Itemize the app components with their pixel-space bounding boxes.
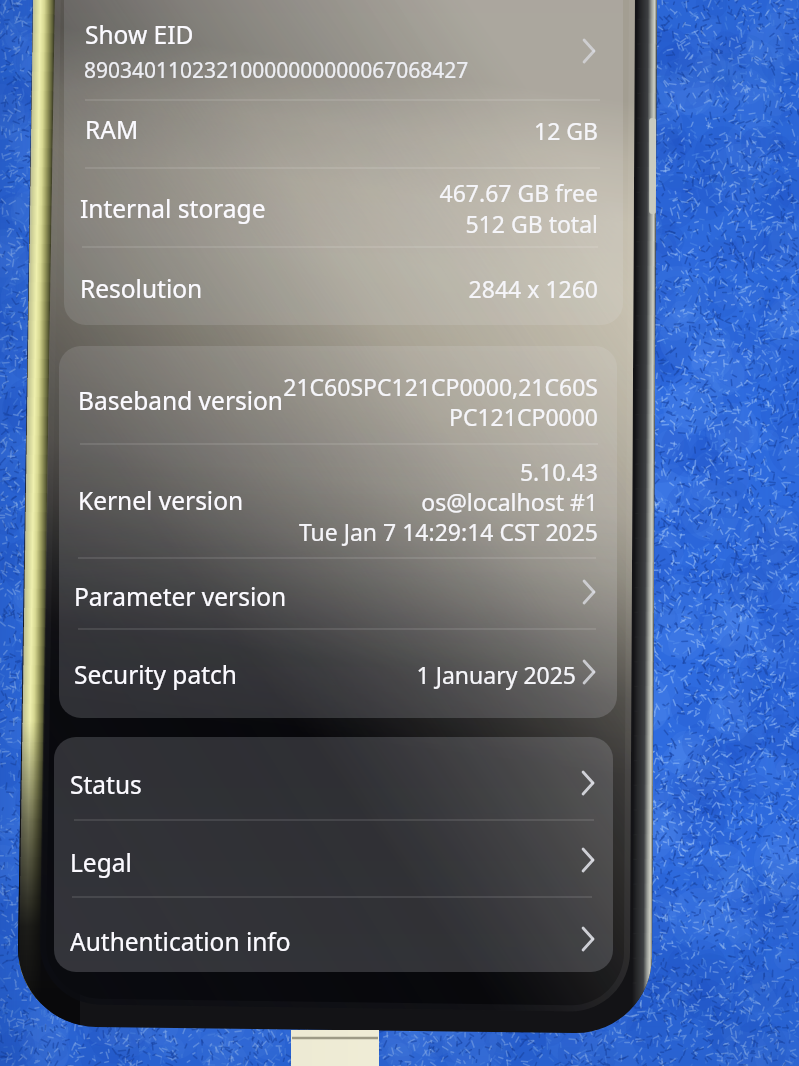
button[interactable]: Internal storage [63, 168, 622, 247]
staticText: Baseband version [78, 384, 284, 417]
staticText: PC121CP0000 [138, 401, 598, 432]
staticText: Status [70, 768, 142, 801]
staticText: RAM [85, 113, 139, 146]
staticText: 5.10.43 [138, 456, 598, 487]
button[interactable]: Kernel version [58, 444, 620, 558]
button[interactable]: Legal [53, 820, 618, 897]
button[interactable]: Status [53, 735, 618, 820]
staticText: os@localhost #1 [138, 486, 598, 517]
button[interactable]: Security patch [58, 629, 620, 716]
button[interactable]: Resolution [63, 247, 622, 326]
button[interactable]: Authentication info [53, 897, 618, 972]
staticText: Show EID [85, 18, 194, 51]
staticText: Security patch [74, 658, 237, 691]
button[interactable]: Baseband version [58, 347, 620, 444]
button[interactable]: RAM [63, 100, 622, 168]
staticText: Authentication info [70, 925, 291, 958]
staticText: Tue Jan 7 14:29:14 CST 2025 [138, 516, 598, 547]
staticText: Resolution [80, 272, 203, 305]
button[interactable]: Show EID [63, 0, 622, 92]
staticText: 89034011023210000000000067068427 [84, 56, 469, 85]
staticText: 467.67 GB free [138, 177, 598, 208]
staticText: 1 January 2025 [116, 659, 576, 690]
staticText: Kernel version [78, 484, 244, 517]
staticText: 21C60SPC121CP0000,21C60S [138, 371, 598, 402]
staticText: Parameter version [74, 580, 287, 613]
staticText: 2844 x 1260 [138, 273, 598, 304]
staticText: Legal [70, 846, 132, 879]
staticText: 12 GB [138, 115, 598, 146]
staticText: Internal storage [80, 192, 266, 225]
button[interactable]: Parameter version [58, 558, 620, 629]
staticText: 512 GB total [138, 208, 598, 239]
